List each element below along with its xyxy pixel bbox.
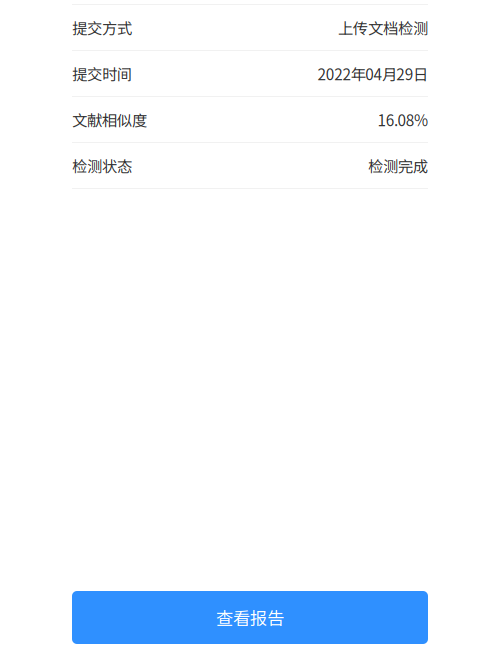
button[interactable]: 查看报告 — [72, 591, 428, 644]
staticText: 提交时间 — [72, 62, 132, 85]
staticText: 上传文档检测 — [338, 16, 428, 39]
staticText: 文献相似度 — [72, 108, 147, 131]
staticText: 检测完成 — [368, 154, 428, 177]
staticText: 查看报告 — [216, 605, 284, 630]
staticText: 16.08% — [377, 108, 428, 131]
staticText: 检测状态 — [72, 154, 132, 177]
staticText: 2022年04月29日 — [317, 62, 428, 85]
staticText: 提交方式 — [72, 16, 132, 39]
